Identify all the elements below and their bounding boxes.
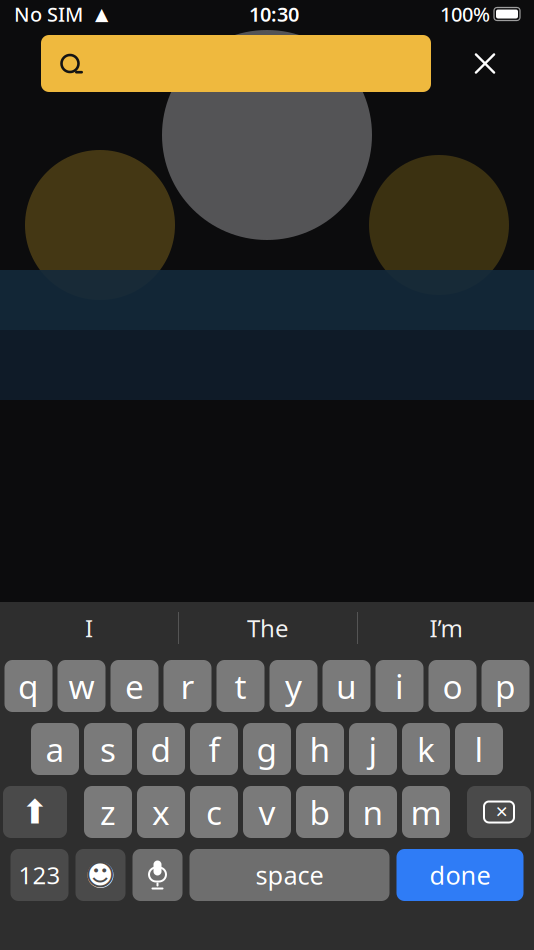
button[interactable]: g (243, 723, 291, 775)
button[interactable]: a (31, 723, 79, 775)
button[interactable]: The (179, 605, 357, 651)
button[interactable]: Shift (3, 786, 67, 838)
button[interactable]: h (296, 723, 344, 775)
staticText: 10:30 (249, 1, 299, 27)
staticText: x (152, 790, 170, 834)
staticText: i (395, 664, 404, 708)
button[interactable]: x (137, 786, 185, 838)
button[interactable]: done (396, 849, 523, 901)
button[interactable]: Emoji keyboard (75, 849, 125, 901)
staticText: 100% (440, 1, 490, 27)
button[interactable]: c (190, 786, 238, 838)
button[interactable]: f (190, 723, 238, 775)
staticText: ⬆ (21, 793, 49, 831)
staticText: q (18, 664, 39, 708)
staticText: ▲ (83, 4, 108, 24)
staticText: e (125, 664, 144, 708)
button[interactable]: u (322, 660, 370, 712)
button[interactable]: I’m (358, 605, 534, 651)
button[interactable]: Delete (467, 786, 531, 838)
staticText: done (429, 858, 490, 892)
button[interactable]: s (84, 723, 132, 775)
button[interactable]: I (0, 605, 178, 651)
staticText: w (68, 664, 94, 708)
staticText: I (85, 612, 93, 644)
button[interactable]: o (428, 660, 476, 712)
staticText: k (417, 727, 435, 771)
staticText: No SIM (14, 1, 83, 27)
staticText: a (45, 727, 64, 771)
button[interactable]: space (189, 849, 389, 901)
staticText: u (336, 664, 357, 708)
staticText: ☺ (85, 858, 116, 892)
button[interactable]: y (269, 660, 317, 712)
staticText: o (442, 664, 462, 708)
button[interactable]: j (349, 723, 397, 775)
staticText: d (150, 727, 171, 771)
staticText: f (208, 727, 219, 771)
staticText: g (256, 727, 277, 771)
staticText: l (474, 727, 483, 771)
staticText: space (255, 858, 323, 892)
button[interactable]: Close search (458, 36, 512, 90)
button[interactable]: n (349, 786, 397, 838)
button[interactable]: d (137, 723, 185, 775)
button[interactable]: z (84, 786, 132, 838)
staticText: The (247, 612, 289, 644)
button[interactable]: l (455, 723, 503, 775)
staticText: I’m (429, 612, 462, 644)
staticText: z (100, 790, 116, 834)
button[interactable]: Dictation (132, 849, 182, 901)
button[interactable]: v (243, 786, 291, 838)
staticText: 123 (18, 859, 60, 891)
button[interactable]: p (481, 660, 529, 712)
staticText: r (180, 664, 194, 708)
button[interactable]: 123 (10, 849, 68, 901)
staticText: s (100, 727, 116, 771)
staticText: v (258, 790, 275, 834)
button[interactable]: k (402, 723, 450, 775)
staticText: b (309, 790, 330, 834)
staticText: n (362, 790, 383, 834)
button[interactable] (41, 35, 431, 92)
button[interactable]: i (375, 660, 423, 712)
button[interactable]: b (296, 786, 344, 838)
button[interactable]: e (110, 660, 158, 712)
button[interactable]: w (57, 660, 105, 712)
staticText: j (368, 727, 377, 771)
staticText: ✕ (495, 803, 508, 821)
button[interactable]: q (4, 660, 52, 712)
button[interactable]: t (216, 660, 264, 712)
staticText: h (309, 727, 330, 771)
staticText: m (410, 790, 441, 834)
staticText: t (234, 664, 246, 708)
staticText: c (206, 790, 222, 834)
button[interactable]: m (402, 786, 450, 838)
staticText: y (285, 664, 302, 708)
button[interactable]: r (163, 660, 211, 712)
staticText: p (495, 664, 516, 708)
